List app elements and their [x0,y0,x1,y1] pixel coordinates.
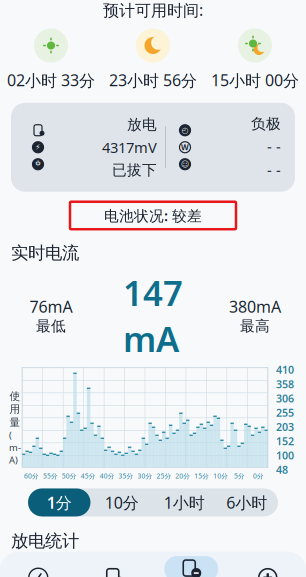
staticText: 15分 [194,472,209,480]
staticText: 电池状况: 较差 [104,206,202,225]
staticText: 预计可用时间: [103,0,203,20]
staticText: 23小时 56分 [109,69,197,91]
staticText: 152 [276,434,294,448]
staticText: - - [267,137,281,156]
staticText: 1分 [47,492,72,513]
staticText: 实时电流 [11,242,79,263]
button[interactable]: 省电 [0,552,76,577]
staticText: 5分 [234,472,245,480]
staticText: 380mA [229,296,281,317]
staticText: 35分 [119,472,134,480]
staticText: 147mA [123,269,183,362]
staticText: 255 [276,405,294,420]
staticText: 负极 [251,115,281,133]
staticText: 15小时 00分 [211,69,299,91]
staticText: 4317mV [102,137,157,157]
staticText: 0分 [253,472,264,480]
staticText: 48 [276,463,288,477]
staticText: 50分 [62,472,77,480]
staticText: 用 [9,403,20,416]
staticText: 203 [276,420,294,434]
staticText: 使 [9,390,20,403]
button[interactable]: 1分 [28,488,90,516]
staticText: 最高 [240,317,270,335]
button[interactable]: 6小时 [215,488,278,516]
staticText: (mA) [9,429,21,466]
staticText: ◴ [181,126,188,135]
staticText: 量 [9,416,20,429]
staticText: 放电统计 [11,530,79,552]
staticText: 55分 [43,472,58,480]
staticText: 306 [276,391,294,405]
button[interactable]: 充电 [76,552,153,577]
button[interactable]: 健康 [229,552,306,577]
button[interactable]: 1小时 [153,488,215,516]
staticText: 6小时 [226,492,267,513]
staticText: 76mA [29,296,72,317]
staticText: 40分 [100,472,115,480]
staticText: 45分 [81,472,96,480]
staticText: ⚡︎ [35,143,41,152]
staticText: 358 [276,377,294,391]
button[interactable]: 10分 [90,488,153,516]
staticText: 1小时 [164,492,205,513]
staticText: 25分 [156,472,171,480]
staticText: 410 [276,363,294,377]
staticText: ⏻ [35,159,40,169]
staticText: 最低 [36,317,66,335]
staticText: 60分 [24,472,39,480]
staticText: 02小时 33分 [7,69,95,91]
staticText: 100 [276,448,294,463]
staticText: 已拔下 [112,161,157,179]
staticText: 30分 [137,472,152,480]
staticText: - - [267,160,281,180]
staticText: 10分 [213,472,228,480]
staticText: ☺ [181,160,189,169]
button[interactable]: 放电 [153,552,229,577]
staticText: W [181,142,189,152]
staticText: 10分 [105,492,139,513]
staticText: 放电 [127,115,157,133]
staticText: 20分 [175,472,190,480]
